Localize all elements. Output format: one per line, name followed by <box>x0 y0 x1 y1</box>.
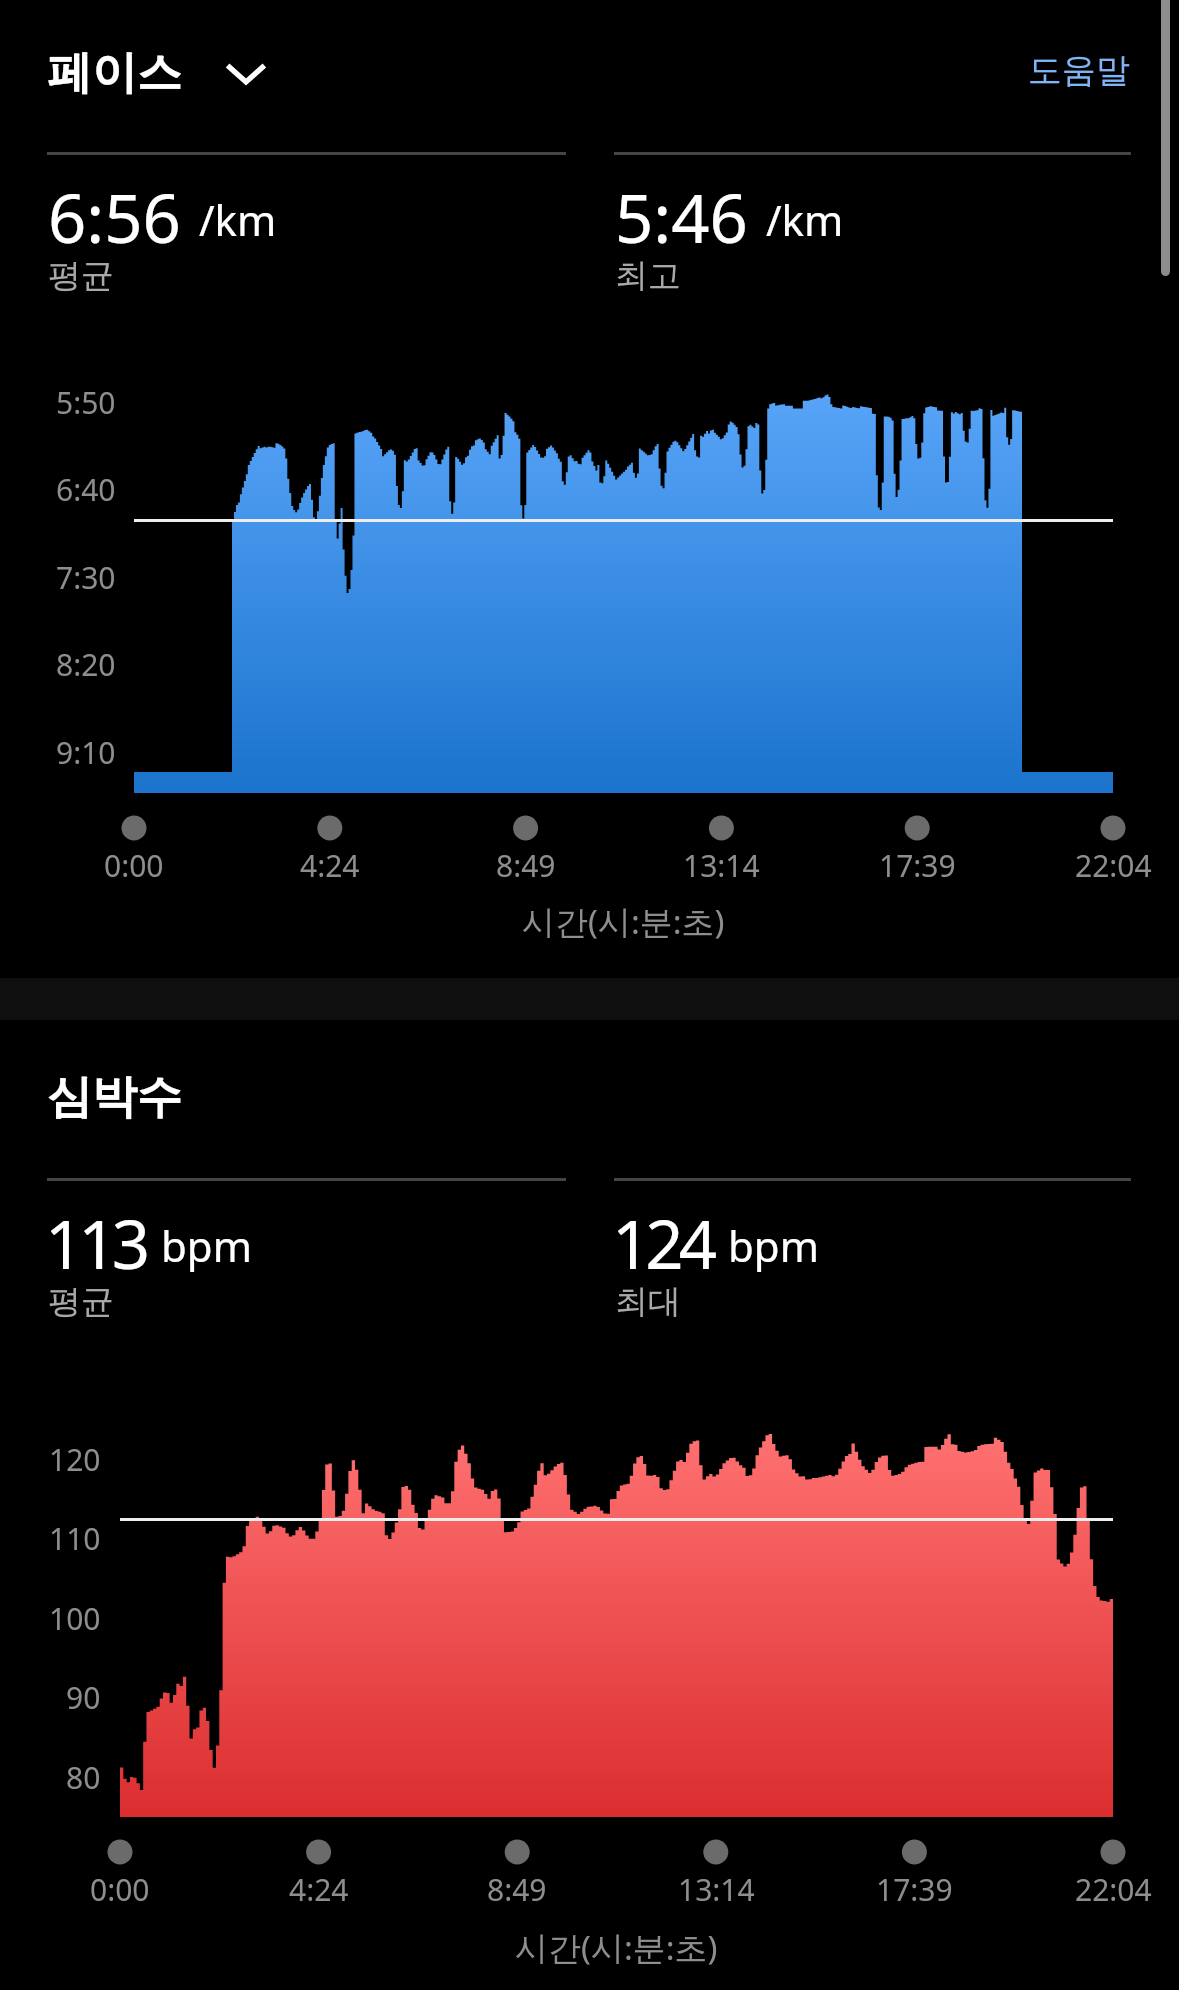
staticText: 도움말 <box>1028 49 1130 92</box>
staticText: 0:00 <box>104 845 164 885</box>
staticText: 시간(시:분:초) <box>522 899 725 944</box>
staticText: 7:30 <box>56 557 116 597</box>
staticText: 평균 <box>48 255 114 297</box>
staticText: 90 <box>66 1677 101 1717</box>
staticText: 5:50 <box>56 382 116 422</box>
staticText: /km <box>199 191 277 248</box>
staticText: 17:39 <box>876 1869 953 1909</box>
staticText: 124 <box>612 1197 712 1288</box>
staticText: 22:04 <box>1075 845 1152 885</box>
staticText: 최대 <box>615 1281 681 1323</box>
staticText: 120 <box>49 1439 101 1479</box>
button[interactable]: 도움말 <box>1008 31 1150 110</box>
staticText: 심박수 <box>47 1069 182 1126</box>
staticText: 110 <box>49 1518 101 1558</box>
staticText: 4:24 <box>300 845 360 885</box>
staticText: 페이스 <box>47 45 182 102</box>
button[interactable]: 심박수 차트 <box>0 1020 1179 1990</box>
staticText: /km <box>766 191 844 248</box>
staticText: 최고 <box>615 255 681 297</box>
button[interactable]: 페이스 차트 <box>0 130 1179 960</box>
staticText: 8:49 <box>496 845 556 885</box>
staticText: 9:10 <box>56 732 116 772</box>
staticText: 6:56 <box>48 171 181 262</box>
staticText: 113 <box>45 1197 145 1288</box>
button[interactable]: 페이스, 차트 종류 선택 <box>32 36 281 109</box>
staticText: 6:40 <box>56 469 116 509</box>
staticText: 0:00 <box>90 1869 150 1909</box>
staticText: 시간(시:분:초) <box>515 1925 718 1970</box>
staticText: 13:14 <box>683 845 760 885</box>
staticText: bpm <box>728 1217 819 1274</box>
staticText: 평균 <box>48 1281 114 1323</box>
staticText: 8:49 <box>487 1869 547 1909</box>
staticText: bpm <box>161 1217 252 1274</box>
staticText: 100 <box>49 1598 101 1638</box>
staticText: 80 <box>66 1757 101 1797</box>
staticText: 13:14 <box>678 1869 755 1909</box>
staticText: 17:39 <box>879 845 956 885</box>
staticText: 8:20 <box>56 644 116 684</box>
staticText: 22:04 <box>1075 1869 1152 1909</box>
staticText: 4:24 <box>289 1869 349 1909</box>
staticText: 5:46 <box>615 171 748 262</box>
